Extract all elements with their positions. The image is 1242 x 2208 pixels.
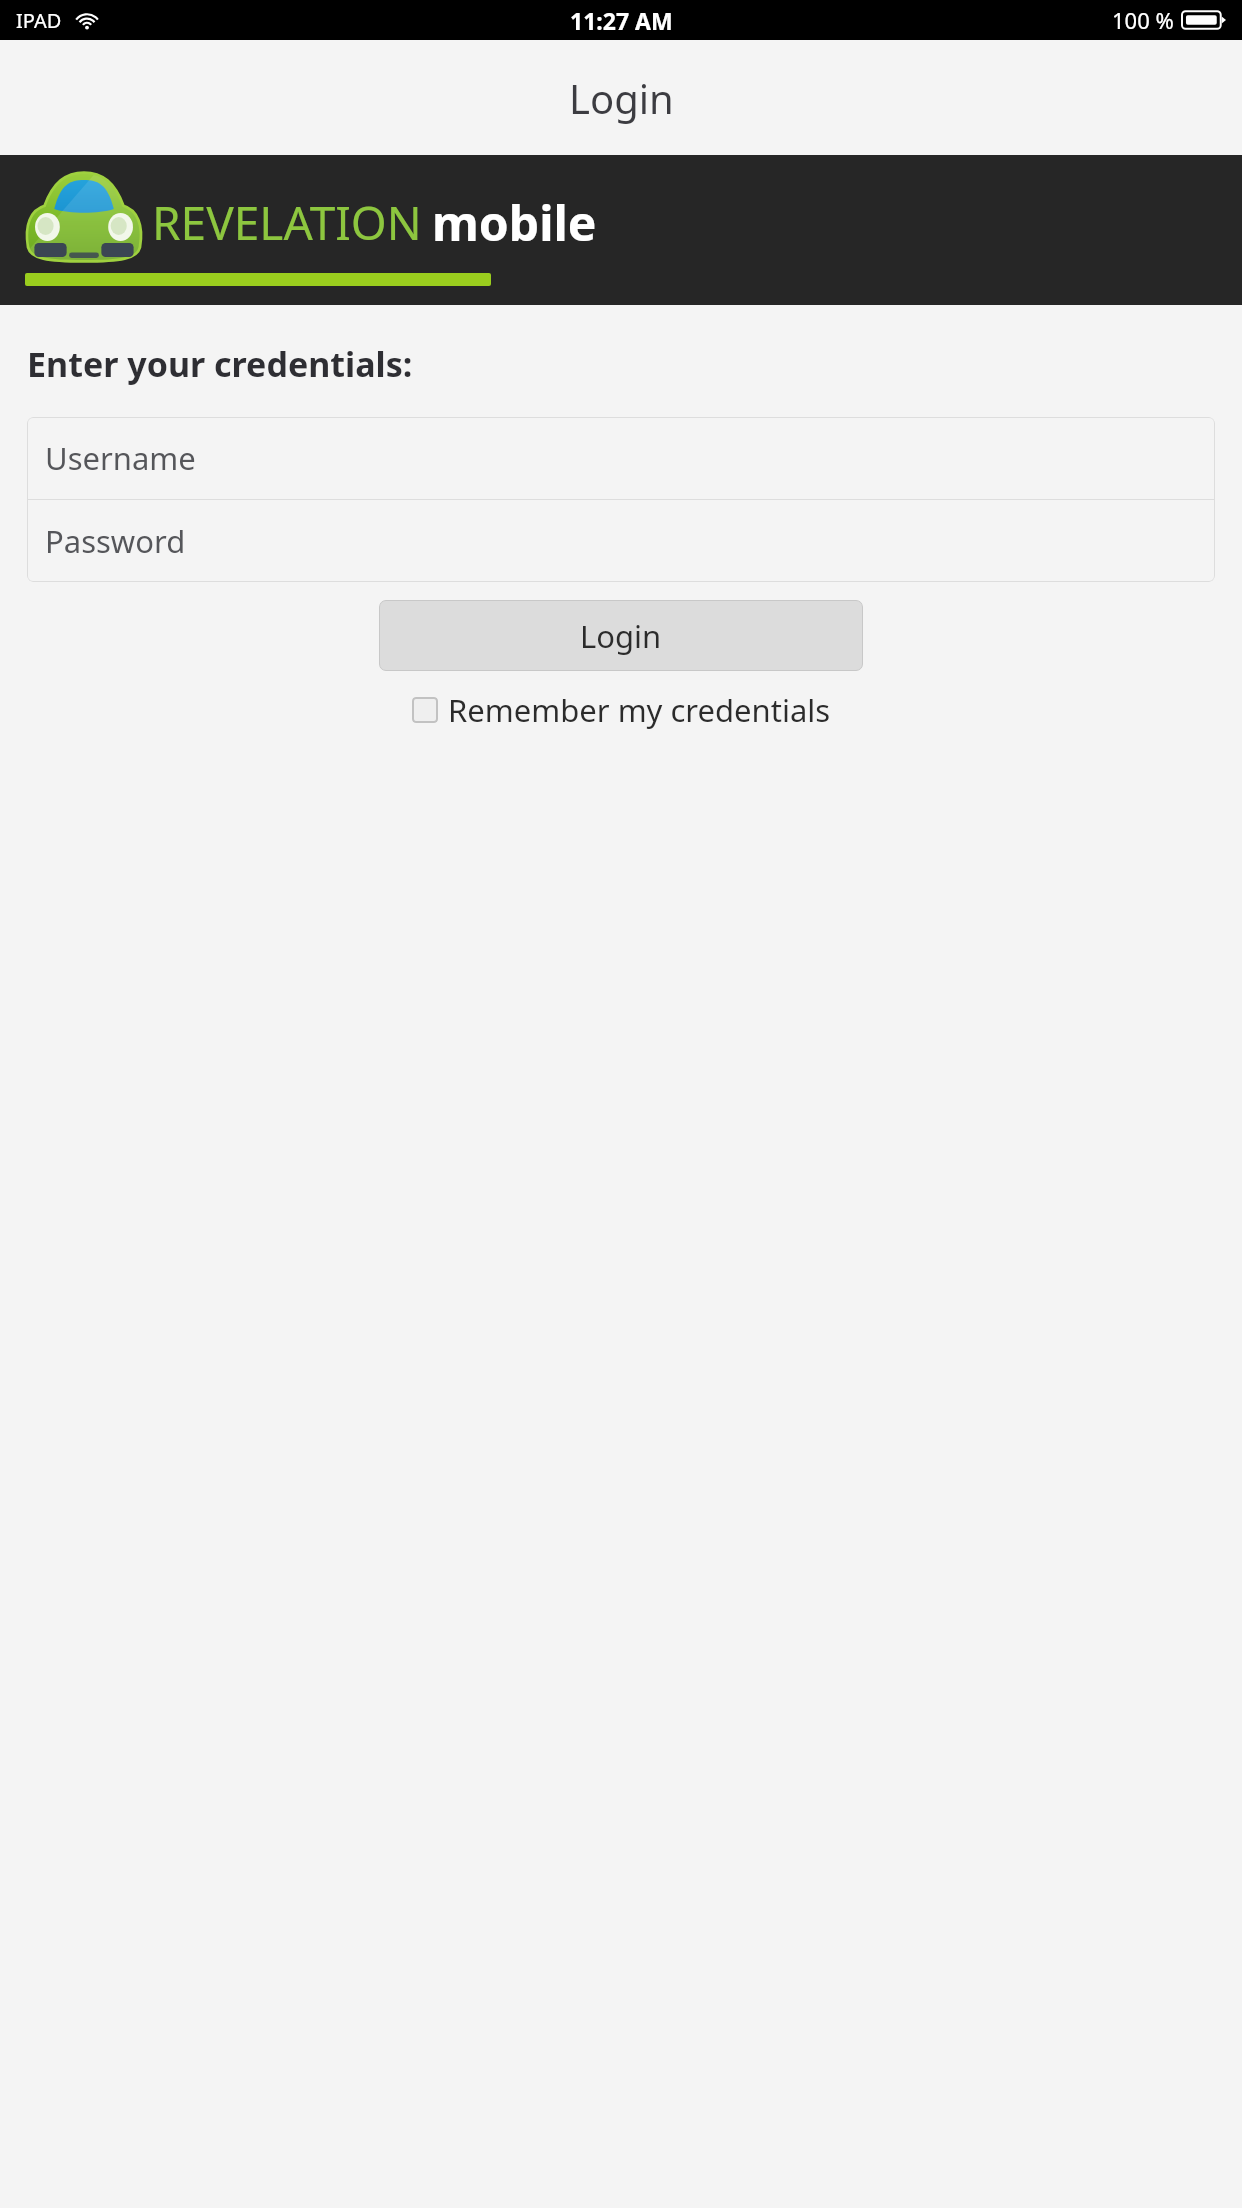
staticText: 100 % (1112, 5, 1174, 35)
staticText: IPAD (16, 7, 62, 34)
staticText: 11:27 AM (570, 5, 673, 36)
other: Remember my credentials checkbox (412, 697, 438, 723)
button[interactable]: Password (27, 500, 1215, 582)
staticText: Username (45, 437, 196, 479)
staticText: mobile (432, 190, 597, 255)
staticText: Remember my credentials (448, 689, 831, 731)
button[interactable]: Remember my credentials checkbox (404, 683, 839, 737)
staticText: Password (45, 520, 186, 562)
button[interactable]: Username (27, 417, 1215, 499)
button[interactable]: Login (379, 600, 863, 671)
staticText: Enter your credentials: (27, 341, 413, 387)
staticText: Login (569, 71, 674, 125)
staticText: Login (580, 615, 662, 657)
staticText: REVELATION (152, 191, 422, 254)
